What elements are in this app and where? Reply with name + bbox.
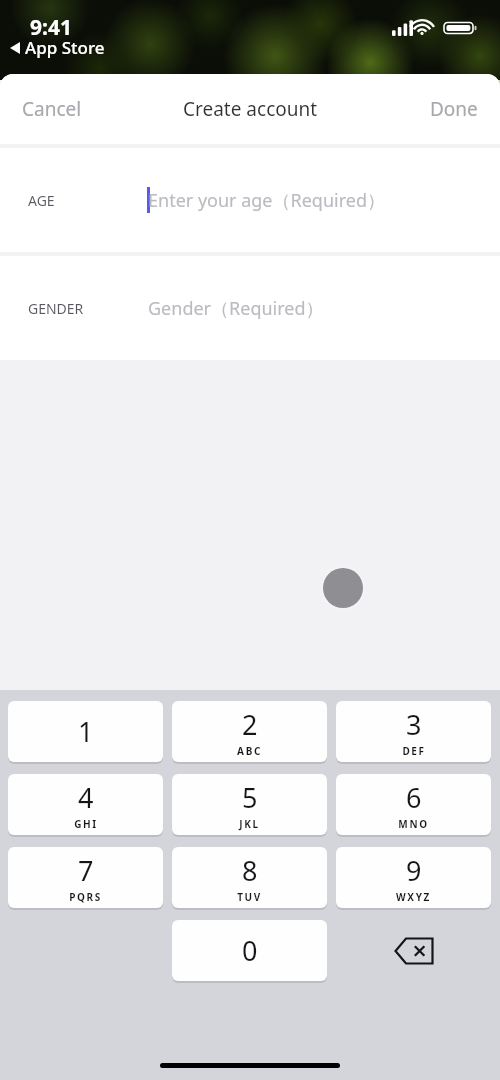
staticText: 5 (242, 779, 258, 816)
staticText: WXYZ (396, 890, 431, 904)
staticText: JKL (239, 817, 260, 831)
staticText: 9:41 (30, 13, 72, 42)
staticText: Done (430, 96, 478, 122)
button[interactable]: 8 (172, 847, 327, 910)
staticText: 6 (406, 779, 422, 816)
button[interactable]: 1 (8, 701, 163, 764)
staticText: MNO (398, 817, 429, 831)
button[interactable]: 0 (172, 920, 327, 983)
button[interactable]: 2 (172, 701, 327, 764)
staticText: PQRS (69, 890, 102, 904)
staticText: 7 (78, 852, 94, 889)
staticText: 2 (242, 706, 258, 743)
staticText: ABC (237, 744, 262, 758)
staticText: 3 (406, 706, 422, 743)
staticText: 8 (242, 852, 258, 889)
button[interactable]: Backspace (336, 920, 491, 981)
button[interactable]: Cancel (8, 88, 96, 130)
staticText: App Store (25, 36, 105, 59)
button[interactable]: App Store (10, 36, 105, 59)
button[interactable]: 5 (172, 774, 327, 837)
staticText: 1 (78, 713, 94, 750)
staticText: 9 (406, 852, 422, 889)
button[interactable]: 4 (8, 774, 163, 837)
staticText: TUV (237, 890, 262, 904)
staticText: DEF (402, 744, 426, 758)
staticText: Create account (183, 96, 318, 122)
staticText: GENDER (28, 299, 84, 318)
staticText: GHI (74, 817, 98, 831)
staticText: AGE (28, 191, 55, 210)
staticText: 0 (242, 932, 258, 969)
button[interactable]: 9 (336, 847, 491, 910)
button[interactable]: Done (416, 88, 492, 130)
button[interactable]: 3 (336, 701, 491, 764)
button[interactable]: 7 (8, 847, 163, 910)
button[interactable]: GENDER (0, 256, 500, 360)
button[interactable]: AGE (0, 148, 500, 252)
staticText: Gender（Required） (148, 296, 324, 321)
button[interactable]: 6 (336, 774, 491, 837)
staticText: Cancel (22, 96, 82, 122)
staticText: Enter your age（Required） (148, 188, 386, 213)
staticText: 4 (78, 779, 94, 816)
